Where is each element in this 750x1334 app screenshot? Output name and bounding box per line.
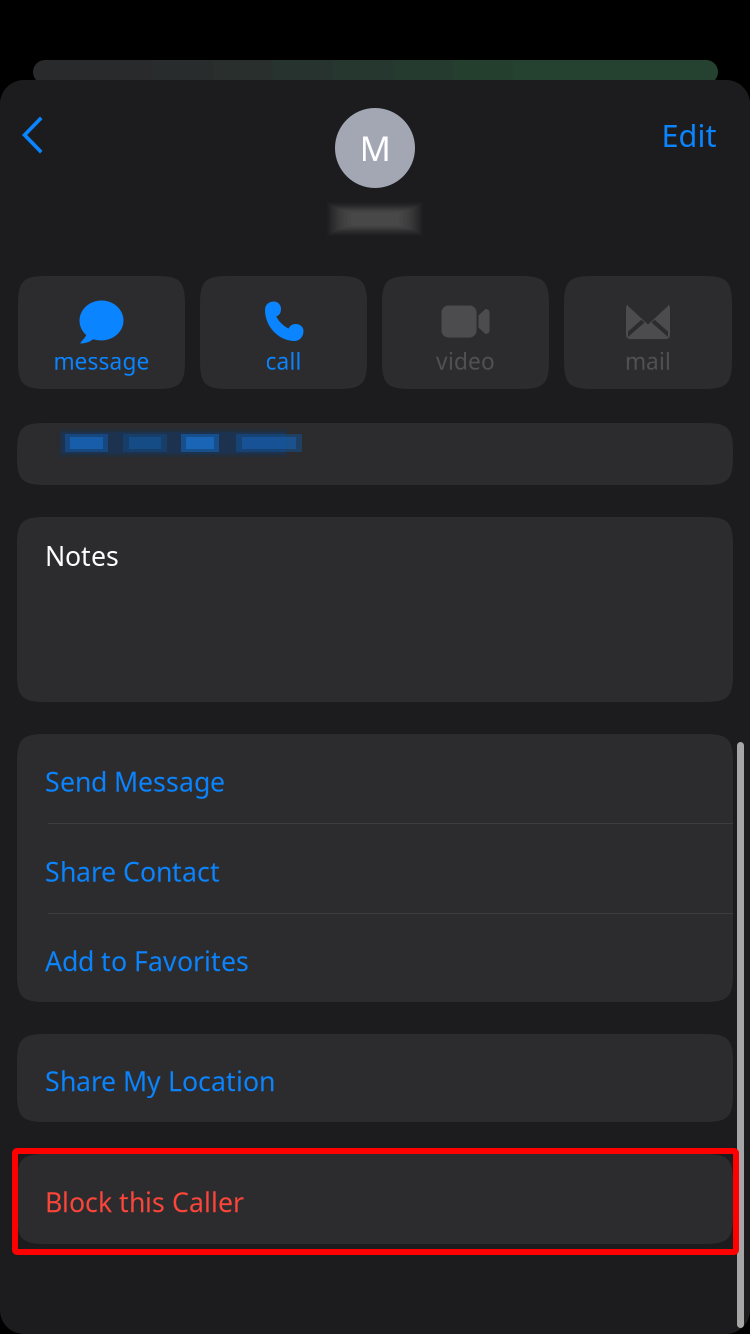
button[interactable]: Add to Favorites — [17, 914, 733, 1002]
staticText: video — [436, 346, 495, 376]
button[interactable]: call — [200, 276, 367, 389]
button[interactable]: Share Contact — [17, 824, 733, 913]
staticText: M — [359, 125, 390, 171]
button[interactable]: Block this Caller — [17, 1154, 733, 1244]
button[interactable]: Back — [0, 80, 62, 190]
button[interactable]: message — [18, 276, 185, 389]
staticText: Add to Favorites — [45, 943, 249, 979]
staticText: mail — [625, 346, 671, 376]
staticText: Send Message — [45, 764, 225, 799]
button[interactable]: Send Message — [17, 734, 733, 823]
staticText: Share My Location — [45, 1063, 275, 1099]
staticText: message — [53, 346, 149, 376]
button[interactable]: mail — [564, 276, 732, 389]
staticText: Edit — [661, 115, 716, 155]
button[interactable]: Edit — [628, 80, 750, 190]
staticText: call — [265, 346, 301, 376]
button[interactable]: Share My Location — [17, 1034, 733, 1122]
button[interactable]: video — [382, 276, 549, 389]
staticText: Notes — [45, 538, 119, 573]
staticText: Block this Caller — [45, 1184, 244, 1220]
staticText: Share Contact — [45, 854, 220, 889]
